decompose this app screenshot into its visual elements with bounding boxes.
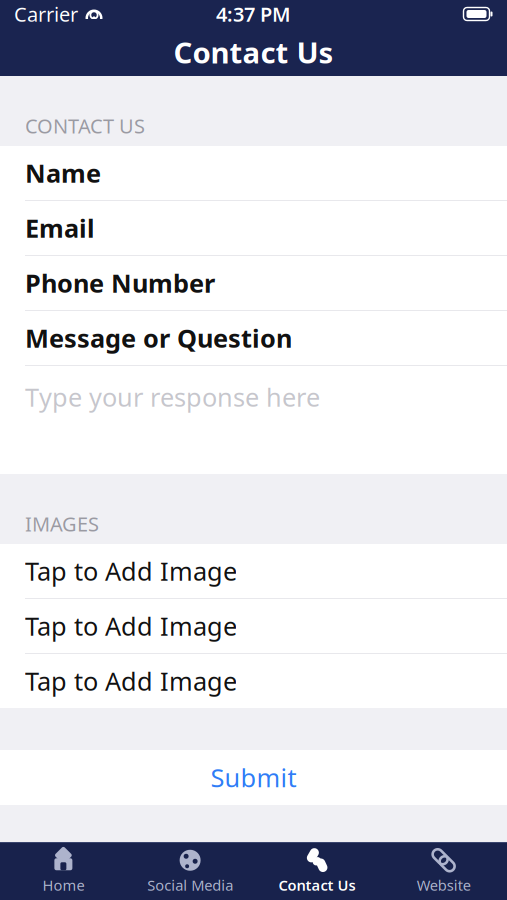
button[interactable]: Tap to Add Image (0, 654, 507, 708)
button[interactable]: Contact Us (253, 843, 380, 900)
staticText: Phone Number (25, 266, 215, 300)
button[interactable]: Website (380, 843, 507, 900)
staticText: Contact Us (173, 32, 333, 71)
staticText: Home (42, 875, 84, 895)
staticText: Message or Question (25, 321, 292, 355)
button[interactable]: Tap to Add Image (0, 599, 507, 653)
staticText: Tap to Add Image (25, 609, 237, 643)
button[interactable]: Social Media (127, 843, 254, 900)
staticText: Type your response here (25, 380, 320, 414)
button[interactable]: Home (0, 843, 127, 900)
button[interactable]: Message or Question (0, 311, 507, 365)
staticText: CONTACT US (25, 112, 145, 139)
button[interactable]: Email (0, 201, 507, 255)
staticText: Name (25, 156, 101, 190)
staticText: Contact Us (278, 875, 355, 895)
button[interactable]: Type your response here (0, 366, 507, 474)
staticText: Carrier (14, 1, 78, 27)
staticText: Submit (210, 761, 296, 794)
staticText: Website (417, 875, 471, 895)
button[interactable]: Tap to Add Image (0, 544, 507, 598)
staticText: 4:37 PM (216, 1, 291, 27)
button[interactable]: Name (0, 146, 507, 200)
staticText: Social Media (147, 875, 233, 895)
staticText: IMAGES (25, 510, 99, 537)
button[interactable]: Phone Number (0, 256, 507, 310)
staticText: Tap to Add Image (25, 664, 237, 698)
staticText: Email (25, 211, 95, 245)
staticText: Tap to Add Image (25, 554, 237, 588)
button[interactable]: Submit (0, 750, 507, 805)
